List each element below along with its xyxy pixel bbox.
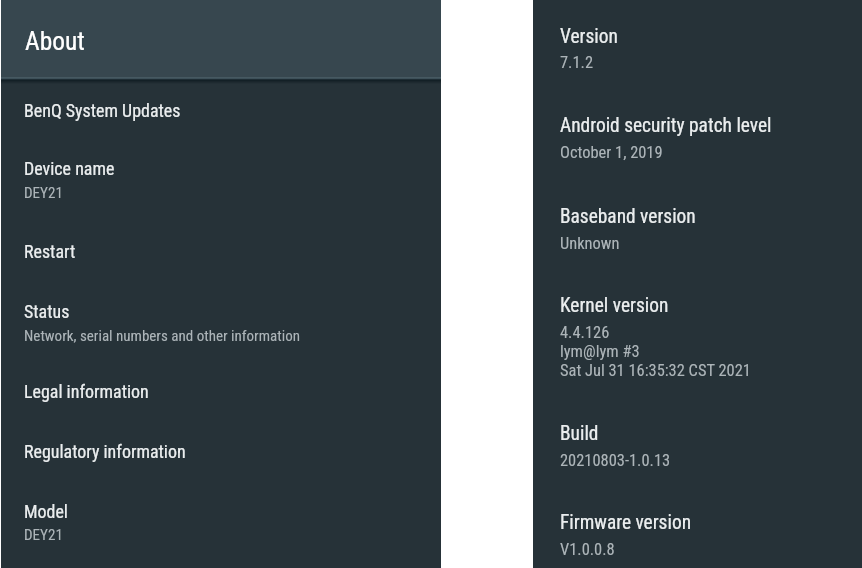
staticText: BenQ System Updates bbox=[24, 100, 181, 121]
staticText: Version bbox=[560, 25, 618, 48]
staticText: Model bbox=[24, 501, 68, 522]
button[interactable]: Firmware version bbox=[533, 484, 862, 568]
staticText: Sat Jul 31 16:35:32 CST 2021 bbox=[560, 361, 751, 380]
staticText: lym@lym #3 bbox=[560, 342, 640, 361]
button[interactable]: Legal information bbox=[1, 359, 441, 419]
staticText: Regulatory information bbox=[24, 441, 186, 462]
button[interactable]: Version bbox=[533, 0, 862, 89]
staticText: Restart bbox=[24, 241, 76, 262]
staticText: Status bbox=[24, 301, 70, 322]
button[interactable]: BenQ System Updates bbox=[1, 79, 441, 139]
staticText: Legal information bbox=[24, 381, 149, 402]
button[interactable]: Android security patch level bbox=[533, 89, 862, 178]
button[interactable]: Build bbox=[533, 395, 862, 484]
staticText: 4.4.126 bbox=[560, 323, 610, 342]
staticText: DEY21 bbox=[24, 526, 63, 544]
button[interactable]: Restart bbox=[1, 219, 441, 279]
staticText: Device name bbox=[24, 158, 115, 179]
staticText: About bbox=[25, 26, 85, 56]
button[interactable]: Status bbox=[1, 279, 441, 359]
button[interactable]: Baseband version bbox=[533, 178, 862, 267]
staticText: DEY21 bbox=[24, 184, 63, 202]
staticText: Kernel version bbox=[560, 294, 669, 317]
button[interactable]: Device name bbox=[1, 139, 441, 219]
button[interactable]: Regulatory information bbox=[1, 419, 441, 479]
staticText: Firmware version bbox=[560, 511, 692, 534]
button[interactable]: Model bbox=[1, 479, 441, 568]
staticText: Network, serial numbers and other inform… bbox=[24, 327, 300, 345]
button[interactable]: Kernel version bbox=[533, 267, 862, 395]
staticText: Baseband version bbox=[560, 205, 696, 228]
staticText: Unknown bbox=[560, 234, 620, 253]
staticText: 7.1.2 bbox=[560, 53, 594, 72]
staticText: V1.0.0.8 bbox=[560, 540, 615, 559]
staticText: Android security patch level bbox=[560, 114, 772, 137]
staticText: 20210803-1.0.13 bbox=[560, 451, 671, 470]
staticText: October 1, 2019 bbox=[560, 143, 663, 162]
staticText: Build bbox=[560, 422, 599, 445]
